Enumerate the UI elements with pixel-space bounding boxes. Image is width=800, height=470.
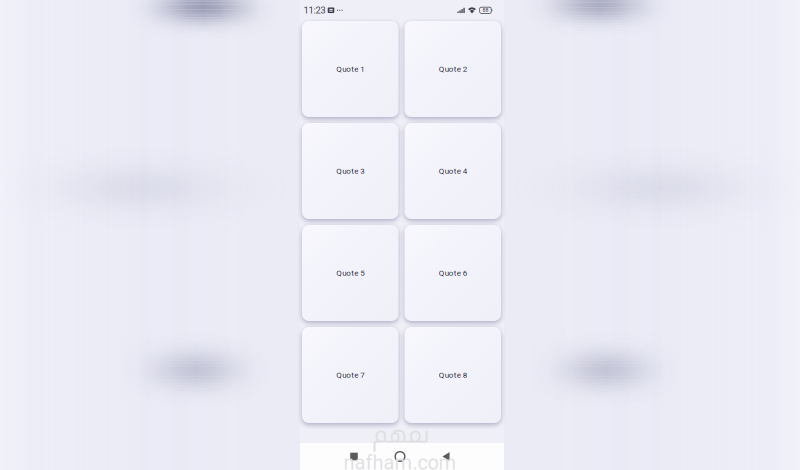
staticText: نفهم: [371, 420, 428, 448]
staticText: Quote 8: [439, 370, 467, 380]
staticText: 11:23: [303, 5, 325, 16]
button[interactable]: Quote 3: [302, 123, 398, 219]
button[interactable]: Quote 8: [404, 327, 501, 423]
staticText: Quote 5: [336, 268, 364, 278]
button[interactable]: Home: [386, 443, 414, 470]
button[interactable]: Quote 4: [404, 123, 501, 219]
button[interactable]: Quote 1: [302, 21, 398, 117]
staticText: nafham.com: [343, 451, 456, 470]
staticText: Quote 3: [336, 166, 364, 176]
staticText: Quote 6: [439, 268, 467, 278]
staticText: 88: [482, 7, 488, 13]
staticText: Quote 2: [439, 64, 467, 74]
staticText: Quote 1: [336, 64, 364, 74]
button[interactable]: Quote 5: [302, 225, 398, 321]
button[interactable]: Quote 2: [404, 21, 501, 117]
button[interactable]: Recents: [340, 443, 368, 470]
button[interactable]: Back: [432, 443, 460, 470]
button[interactable]: Quote 6: [404, 225, 501, 321]
staticText: Quote 7: [336, 370, 364, 380]
staticText: Quote 4: [439, 166, 467, 176]
button[interactable]: Quote 7: [302, 327, 398, 423]
